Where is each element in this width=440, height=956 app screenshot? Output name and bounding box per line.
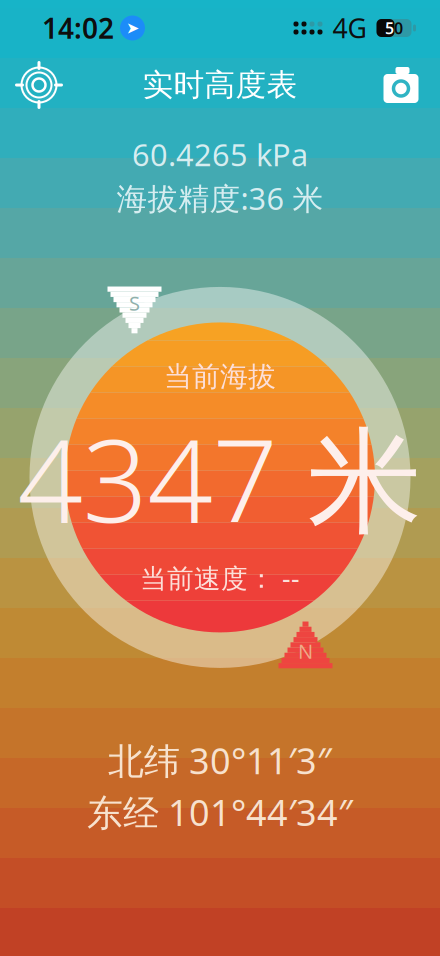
staticText: 4347 米 — [17, 402, 422, 554]
staticText: N — [298, 638, 313, 664]
staticText: 60.4265 kPa — [132, 134, 308, 175]
button[interactable]: 设置 — [8, 56, 70, 114]
staticText: S — [129, 290, 140, 316]
button[interactable]: 拍照 — [370, 56, 432, 114]
staticText: 14:02 — [42, 9, 114, 47]
staticText: 北纬 30°11′3″ — [108, 736, 332, 784]
staticText: 当前海拔 — [164, 359, 276, 394]
staticText: 0 — [394, 17, 403, 39]
staticText: 海拔精度:36 米 — [116, 178, 323, 218]
staticText: 东经 101°44′34″ — [87, 788, 353, 836]
staticText: 4G — [332, 10, 366, 46]
staticText: 实时高度表 — [142, 66, 297, 104]
staticText: 5 — [385, 17, 394, 39]
staticText: 当前速度： -- — [140, 560, 300, 595]
staticText: ➤ — [126, 19, 139, 37]
